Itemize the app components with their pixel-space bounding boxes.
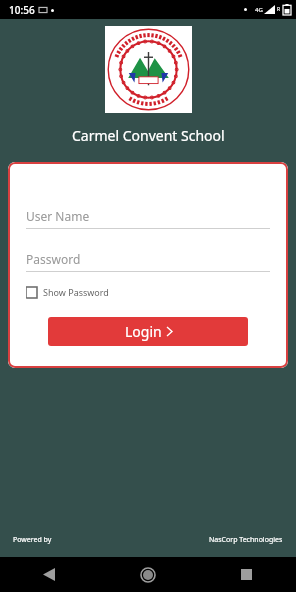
staticText: Show Password [43, 286, 109, 298]
button[interactable]: Show Password [26, 284, 109, 300]
staticText: NasCorp Technologies [209, 535, 283, 545]
staticText: 10:56 [9, 3, 35, 17]
staticText: Powered by [13, 535, 52, 545]
staticText: R [277, 6, 281, 13]
staticText: Carmel Convent School [72, 126, 225, 145]
button[interactable]: Back [0, 557, 98, 592]
button[interactable]: Password [26, 251, 81, 267]
button[interactable]: User Name [26, 208, 90, 224]
staticText: Login [125, 322, 162, 341]
button[interactable]: Login [48, 317, 248, 346]
button[interactable]: Recent apps [197, 557, 296, 592]
button[interactable]: Home [98, 557, 197, 592]
staticText: 4G [255, 6, 263, 14]
